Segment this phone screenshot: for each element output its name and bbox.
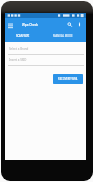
button[interactable]: Search <box>67 22 72 27</box>
staticText: Insert a SSID <box>9 58 27 62</box>
staticText: Wpa Check <box>22 23 38 27</box>
button[interactable]: RECOVERY WPA <box>53 74 83 84</box>
staticText: Select a Brand <box>9 47 29 51</box>
staticText: MANUAL MODE <box>53 34 73 38</box>
staticText: RECOVERY WPA <box>58 77 78 81</box>
button[interactable]: MANUAL MODE <box>40 30 86 41</box>
staticText: SCAN WIFI <box>16 34 30 38</box>
button[interactable]: SCAN WIFI <box>5 30 40 41</box>
button[interactable]: More options <box>77 22 82 27</box>
button[interactable]: Menu <box>8 23 13 28</box>
